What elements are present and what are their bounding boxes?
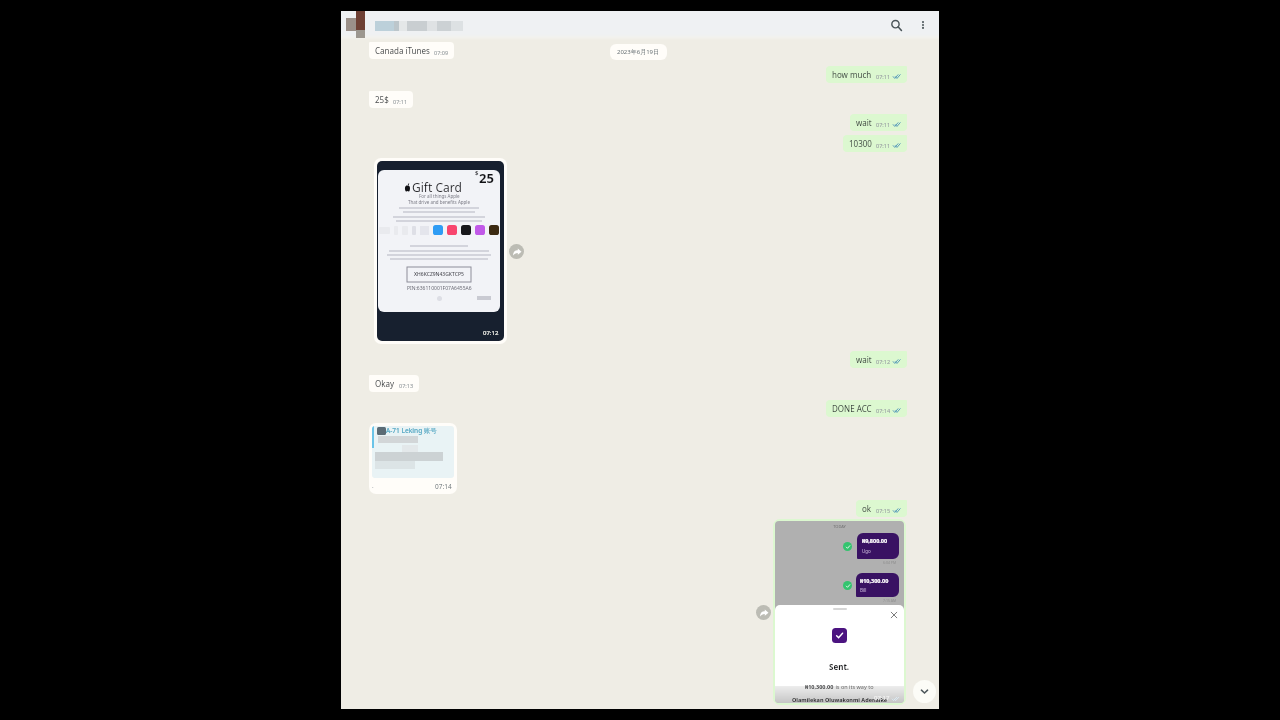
staticText: Canada iTunes	[375, 45, 430, 56]
staticText: Sent.	[829, 661, 850, 672]
staticText: wait	[856, 354, 872, 365]
staticText: 07:14	[876, 407, 891, 414]
staticText: XH6KCZ9N43GKTCP5	[414, 271, 464, 278]
staticText: $	[475, 170, 479, 177]
staticText: ₦9,800.00	[862, 537, 888, 544]
staticText: For all things Apple	[419, 193, 460, 199]
button[interactable]: how much	[826, 66, 907, 83]
button[interactable]: Search	[883, 12, 909, 38]
staticText: 6:04 PM	[883, 560, 897, 565]
button[interactable]: Payment screenshot	[775, 521, 904, 703]
staticText: 07:12	[483, 329, 499, 337]
staticText: 7:15 AM	[883, 598, 897, 603]
staticText: 07:15	[876, 507, 891, 514]
staticText: Olamilekan Oluwakonmi Adenaike	[792, 696, 888, 703]
staticText: DONE ACC	[832, 403, 872, 414]
button[interactable]: Forward	[509, 244, 524, 259]
button[interactable]: Okay	[369, 375, 419, 392]
staticText: ·	[372, 483, 374, 491]
button[interactable]: Forward	[756, 605, 771, 620]
staticText: 25$	[375, 94, 389, 105]
staticText: 07:11	[876, 142, 891, 149]
button[interactable]: Canada iTunes	[369, 42, 454, 59]
staticText: 07:11	[393, 98, 408, 105]
staticText: 2023年6月19日	[617, 48, 660, 56]
staticText: Gift Card	[412, 179, 462, 195]
staticText: PIN:636110001F07A6455A6	[407, 285, 472, 292]
staticText: ₦10,300.00	[805, 683, 834, 690]
button[interactable]: Photo	[377, 161, 504, 341]
staticText: 07:09	[434, 49, 449, 56]
button[interactable]: More options	[910, 12, 936, 38]
button[interactable]: Scroll to bottom	[913, 680, 936, 703]
button[interactable]: ok	[856, 500, 907, 517]
staticText: 07:11	[876, 73, 891, 80]
button[interactable]: Close	[890, 611, 898, 619]
button[interactable]: A-71 Leking 账号	[369, 423, 457, 494]
staticText: 25	[479, 170, 494, 187]
staticText: Bill	[860, 587, 867, 593]
staticText: TODAY	[775, 524, 904, 529]
staticText: 07:14	[435, 482, 452, 491]
staticText: 07:12	[876, 358, 891, 365]
button[interactable]: Back and contact avatar	[346, 11, 370, 38]
staticText: A-71 Leking 账号	[386, 426, 437, 435]
button[interactable]: 25$	[369, 91, 413, 108]
staticText: wait	[856, 117, 872, 128]
staticText: Ugo	[862, 548, 871, 554]
staticText: how much	[832, 69, 872, 80]
staticText: That drive and benefits Apple	[408, 199, 471, 205]
staticText: ₦10,300.00	[860, 577, 889, 584]
button[interactable]: wait	[850, 351, 907, 368]
staticText: 07:17	[874, 694, 890, 702]
button[interactable]: wait	[850, 114, 907, 131]
staticText: Okay	[375, 378, 395, 389]
staticText: is on its way to	[834, 683, 874, 690]
button[interactable]: 10300	[843, 135, 907, 152]
staticText: 10300	[849, 138, 872, 149]
staticText: 07:11	[876, 121, 891, 128]
staticText: 07:13	[399, 382, 414, 389]
button[interactable]: DONE ACC	[826, 400, 907, 417]
staticText: ok	[862, 503, 872, 514]
